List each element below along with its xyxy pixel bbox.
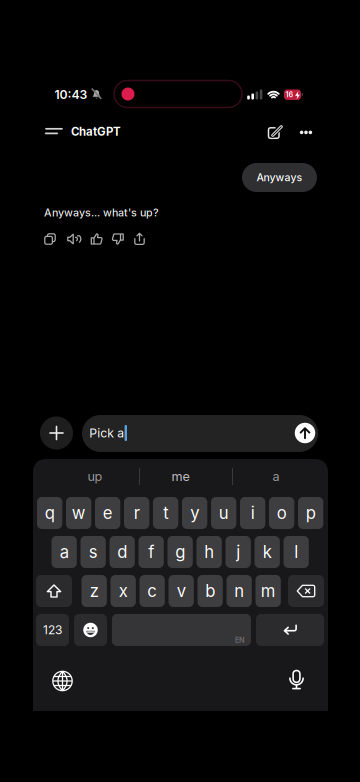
staticText: v [177,581,186,601]
button[interactable]: c [139,575,165,607]
button[interactable]: Add [40,416,73,449]
staticText: p [306,503,316,523]
button[interactable]: up [50,461,140,491]
button[interactable]: Space [112,614,251,646]
button[interactable]: k [254,536,280,568]
staticText: 123 [43,623,62,637]
button[interactable]: Numbers [36,614,69,646]
staticText: a [60,542,69,562]
staticText: e [103,503,113,523]
button[interactable]: Good response [90,233,103,245]
staticText: c [147,581,157,601]
button[interactable]: New chat [261,119,287,145]
button[interactable]: i [240,497,265,529]
staticText: h [204,542,214,562]
staticText: Anyways... what's up? [44,206,159,219]
button[interactable]: Bad response [111,233,124,245]
staticText: up [87,469,102,484]
button[interactable]: me [136,461,224,491]
button[interactable]: s [80,536,106,568]
button[interactable]: Read aloud [67,233,81,245]
staticText: l [294,542,298,562]
staticText: s [89,542,98,562]
staticText: q [45,503,55,523]
staticText: k [263,542,272,562]
button[interactable]: Message [82,415,318,452]
staticText: f [148,542,154,562]
button[interactable]: a [51,536,77,568]
staticText: d [117,542,127,562]
staticText: o [277,503,287,523]
button[interactable]: o [269,497,294,529]
button[interactable]: l [283,536,309,568]
button[interactable]: More options [295,120,317,142]
staticText: g [175,542,185,562]
button[interactable]: b [197,575,223,607]
staticText: i [251,503,255,523]
button[interactable]: w [66,497,91,529]
button[interactable]: h [196,536,222,568]
staticText: u [219,503,229,523]
button[interactable]: Dictate [288,670,304,692]
button[interactable]: n [226,575,252,607]
staticText: me [171,469,189,484]
button[interactable]: r [124,497,149,529]
button[interactable]: g [167,536,193,568]
button[interactable]: Return [256,614,324,646]
button[interactable]: j [225,536,251,568]
button[interactable]: m [255,575,281,607]
button[interactable]: d [109,536,135,568]
staticText: x [119,581,128,601]
staticText: n [234,581,244,601]
staticText: Pick a [89,426,124,440]
staticText: ChatGPT [71,125,121,138]
staticText: w [72,503,86,523]
staticText: t [163,503,168,523]
button[interactable]: Next keyboard [52,670,73,691]
staticText: j [236,542,240,562]
button[interactable]: x [110,575,136,607]
button[interactable]: f [138,536,164,568]
button[interactable]: a [231,461,321,491]
staticText: 10:43 [54,87,87,102]
button[interactable]: t [153,497,178,529]
staticText: 16 [285,90,293,99]
button[interactable]: p [298,497,323,529]
button[interactable]: Shift [36,575,72,607]
button[interactable]: v [168,575,194,607]
button[interactable]: Share [133,232,145,245]
button[interactable]: z [81,575,107,607]
staticText: EN [235,636,245,644]
staticText: y [190,503,199,523]
button[interactable]: q [37,497,62,529]
staticText: b [205,581,215,601]
button[interactable]: Copy [44,233,56,245]
button[interactable]: Send [295,423,315,443]
staticText: m [261,581,276,601]
button[interactable]: Delete [288,575,324,607]
staticText: z [90,581,99,601]
button[interactable]: Menu [39,116,69,146]
button[interactable]: e [95,497,120,529]
button[interactable]: u [211,497,236,529]
staticText: r [134,503,140,523]
staticText: a [272,469,279,484]
button[interactable]: Emoji [74,614,107,646]
button[interactable]: y [182,497,207,529]
staticText: Anyways [256,171,302,184]
